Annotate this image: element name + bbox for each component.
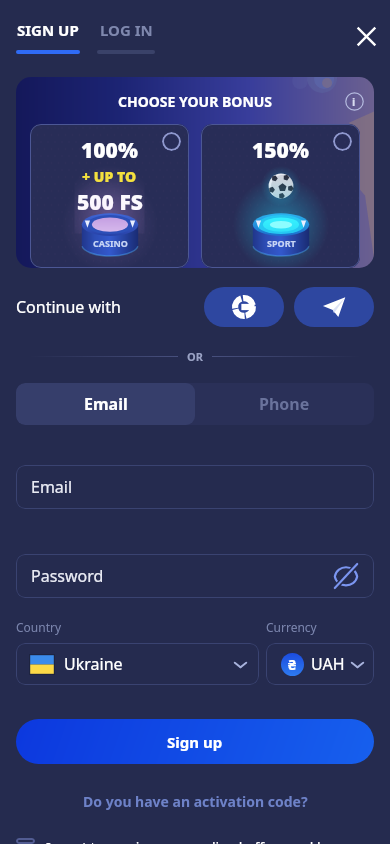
staticText: SPORT xyxy=(267,237,296,249)
staticText: Phone xyxy=(259,393,310,415)
staticText: Country xyxy=(16,619,62,635)
staticText: 100% xyxy=(81,136,138,165)
staticText: Password xyxy=(31,565,104,587)
staticText: 500 FS xyxy=(77,188,143,217)
button[interactable]: Do you have an activation code? xyxy=(79,788,312,815)
button[interactable]: Continue with Telegram xyxy=(294,287,374,327)
button[interactable]: SIGN UP xyxy=(16,20,80,54)
button[interactable]: 100% xyxy=(30,124,189,268)
button[interactable]: Bonus info xyxy=(343,90,365,112)
staticText: UAH xyxy=(311,653,345,675)
button[interactable]: ₴ xyxy=(266,643,374,685)
button[interactable] xyxy=(16,838,35,844)
staticText: CASINO xyxy=(93,237,128,249)
staticText: Sign up xyxy=(167,732,223,752)
button[interactable]: Ukraine xyxy=(16,643,259,685)
staticText: i xyxy=(352,94,356,109)
button[interactable]: Close xyxy=(351,21,381,51)
staticText: CHOOSE YOUR BONUS xyxy=(118,92,273,111)
button[interactable]: LOG IN xyxy=(97,20,155,54)
staticText: ₴ xyxy=(288,655,297,674)
staticText: 150% xyxy=(252,136,309,165)
staticText: + UP TO xyxy=(82,167,137,186)
staticText: I want to receive personalised offers an… xyxy=(46,838,373,844)
button[interactable]: Email xyxy=(16,465,374,509)
button[interactable]: Show password xyxy=(331,561,361,591)
staticText: LOG IN xyxy=(100,20,153,40)
staticText: Continue with xyxy=(16,296,121,318)
button[interactable]: Continue with Google xyxy=(204,287,284,327)
button[interactable]: 150% xyxy=(201,124,360,268)
button[interactable]: Password xyxy=(16,554,374,598)
staticText: Email xyxy=(31,476,73,498)
button[interactable]: Sign up xyxy=(16,719,374,764)
button[interactable]: Phone xyxy=(195,383,374,425)
button[interactable]: Email xyxy=(16,383,195,425)
staticText: Currency xyxy=(266,619,317,635)
staticText: SIGN UP xyxy=(17,20,79,40)
staticText: OR xyxy=(187,349,203,364)
staticText: Email xyxy=(84,393,128,415)
staticText: Ukraine xyxy=(64,653,123,675)
